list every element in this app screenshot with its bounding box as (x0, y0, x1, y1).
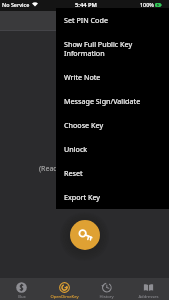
button[interactable]: Export Key (56, 185, 169, 209)
button[interactable]: Key (70, 220, 100, 250)
staticText: Bux (18, 294, 26, 300)
staticText: Message Sign/Validate (64, 96, 141, 106)
button[interactable]: History (85, 278, 127, 300)
staticText: Set PIN Code (64, 15, 108, 25)
button[interactable]: Reset (56, 161, 169, 185)
staticText: OpenDimeKey (50, 294, 79, 300)
staticText: Export Key (64, 192, 101, 202)
button[interactable]: Unlock (56, 137, 169, 161)
staticText: Unlock (64, 144, 88, 154)
staticText: No Service (2, 1, 30, 8)
staticText: 5:44 PM (75, 1, 98, 9)
button[interactable]: Write Note (56, 65, 169, 89)
staticText: History (99, 294, 114, 300)
staticText: 100% (140, 1, 154, 8)
staticText: (Read Only) (39, 164, 77, 174)
button[interactable]: Addresses (127, 278, 169, 300)
staticText: Reset (64, 168, 83, 178)
button[interactable]: Show Full Public Key Information (56, 32, 169, 65)
button[interactable]: Choose Key (56, 113, 169, 137)
staticText: Show Full Public Key Information (64, 39, 163, 58)
button[interactable]: Bux (0, 278, 43, 300)
staticText: Addresses (138, 294, 159, 300)
staticText: Choose Key (64, 120, 104, 130)
button[interactable]: OpenDimeKey (43, 278, 85, 300)
staticText: Write Note (64, 72, 101, 82)
button[interactable]: Message Sign/Validate (56, 89, 169, 113)
button[interactable]: Set PIN Code (56, 8, 169, 32)
